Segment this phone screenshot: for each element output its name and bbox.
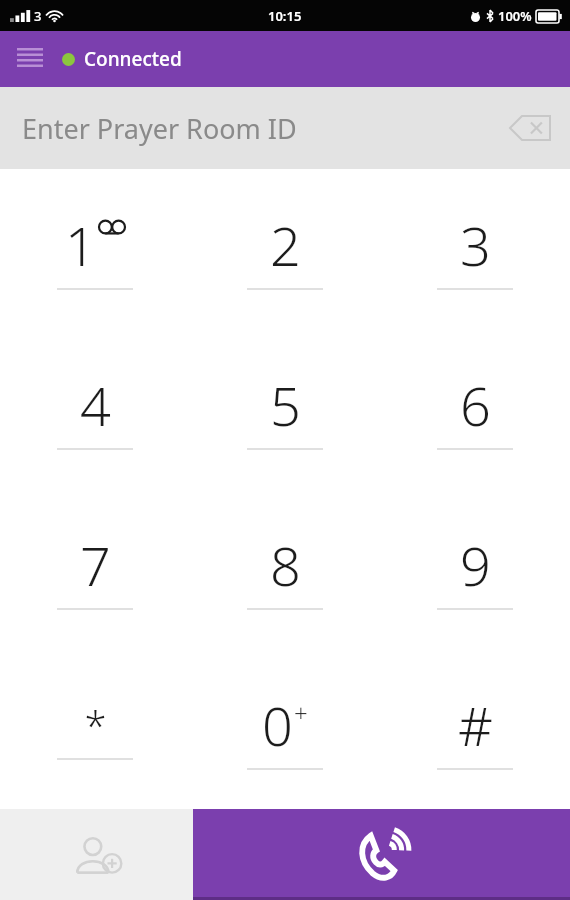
staticText: 4 bbox=[80, 368, 111, 442]
button[interactable]: Call bbox=[193, 809, 570, 900]
staticText: 2 bbox=[270, 208, 301, 282]
staticText: 6 bbox=[460, 368, 491, 442]
staticText: 3 bbox=[34, 7, 42, 25]
staticText: 0 bbox=[262, 688, 293, 762]
button[interactable]: 2 bbox=[190, 169, 380, 329]
button[interactable]: 1 bbox=[0, 169, 190, 329]
staticText: 10:15 bbox=[268, 7, 302, 25]
button[interactable]: 6 bbox=[380, 329, 570, 489]
button[interactable]: Enter Prayer Room ID bbox=[0, 87, 570, 169]
button[interactable]: Open menu bbox=[8, 37, 52, 81]
staticText: * bbox=[84, 698, 107, 752]
staticText: Enter Prayer Room ID bbox=[22, 110, 297, 147]
button[interactable]: 0 bbox=[190, 649, 380, 809]
staticText: Connected bbox=[84, 46, 182, 72]
staticText: 9 bbox=[460, 528, 491, 602]
button[interactable]: 5 bbox=[190, 329, 380, 489]
button[interactable]: * bbox=[0, 649, 190, 809]
staticText: 5 bbox=[270, 368, 301, 442]
staticText: 8 bbox=[270, 528, 301, 602]
button[interactable]: 8 bbox=[190, 489, 380, 649]
button[interactable]: Backspace bbox=[502, 100, 558, 156]
staticText: 100% bbox=[498, 7, 532, 25]
button[interactable]: Add contact bbox=[0, 809, 193, 900]
staticText: # bbox=[458, 688, 493, 762]
button[interactable]: 9 bbox=[380, 489, 570, 649]
staticText: 7 bbox=[80, 528, 111, 602]
staticText: + bbox=[294, 696, 308, 729]
button[interactable]: # bbox=[380, 649, 570, 809]
staticText: 1 bbox=[65, 208, 96, 282]
button[interactable]: 4 bbox=[0, 329, 190, 489]
staticText: 3 bbox=[460, 208, 491, 282]
button[interactable]: 7 bbox=[0, 489, 190, 649]
button[interactable]: 3 bbox=[380, 169, 570, 329]
